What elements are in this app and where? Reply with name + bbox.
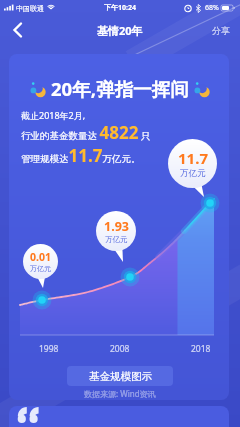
staticText: 基金规模图示 bbox=[89, 370, 152, 383]
staticText: 1.93 bbox=[104, 218, 129, 235]
button[interactable] bbox=[6, 18, 30, 42]
staticText: 万亿元 bbox=[105, 235, 128, 244]
staticText: 20年,弹指一挥间 bbox=[51, 76, 189, 101]
staticText: 行业的基金数量达 4822 只 bbox=[21, 121, 151, 144]
staticText: 管理规模达11.7万亿元。 bbox=[21, 144, 141, 167]
button[interactable]: 基金规模图示 bbox=[67, 366, 173, 386]
staticText: 11.7 bbox=[178, 148, 208, 168]
staticText: 2018 bbox=[191, 343, 211, 355]
staticText: 2008 bbox=[110, 343, 130, 355]
staticText: 0.01 bbox=[30, 250, 51, 264]
staticText: 中国联通 bbox=[16, 4, 44, 13]
button[interactable]: 分享 bbox=[212, 25, 230, 36]
staticText: 分享 bbox=[212, 25, 230, 36]
staticText: 68% bbox=[205, 3, 219, 13]
staticText: 下午10:24 bbox=[104, 3, 136, 13]
staticText: 1998 bbox=[39, 343, 59, 355]
staticText: 基情20年 bbox=[97, 23, 143, 38]
staticText: 万亿元 bbox=[180, 168, 206, 179]
staticText: 数据来源: Wind资讯 bbox=[84, 388, 156, 399]
staticText: 万亿元 bbox=[30, 264, 51, 273]
staticText: 截止2018年2月, bbox=[21, 109, 86, 121]
